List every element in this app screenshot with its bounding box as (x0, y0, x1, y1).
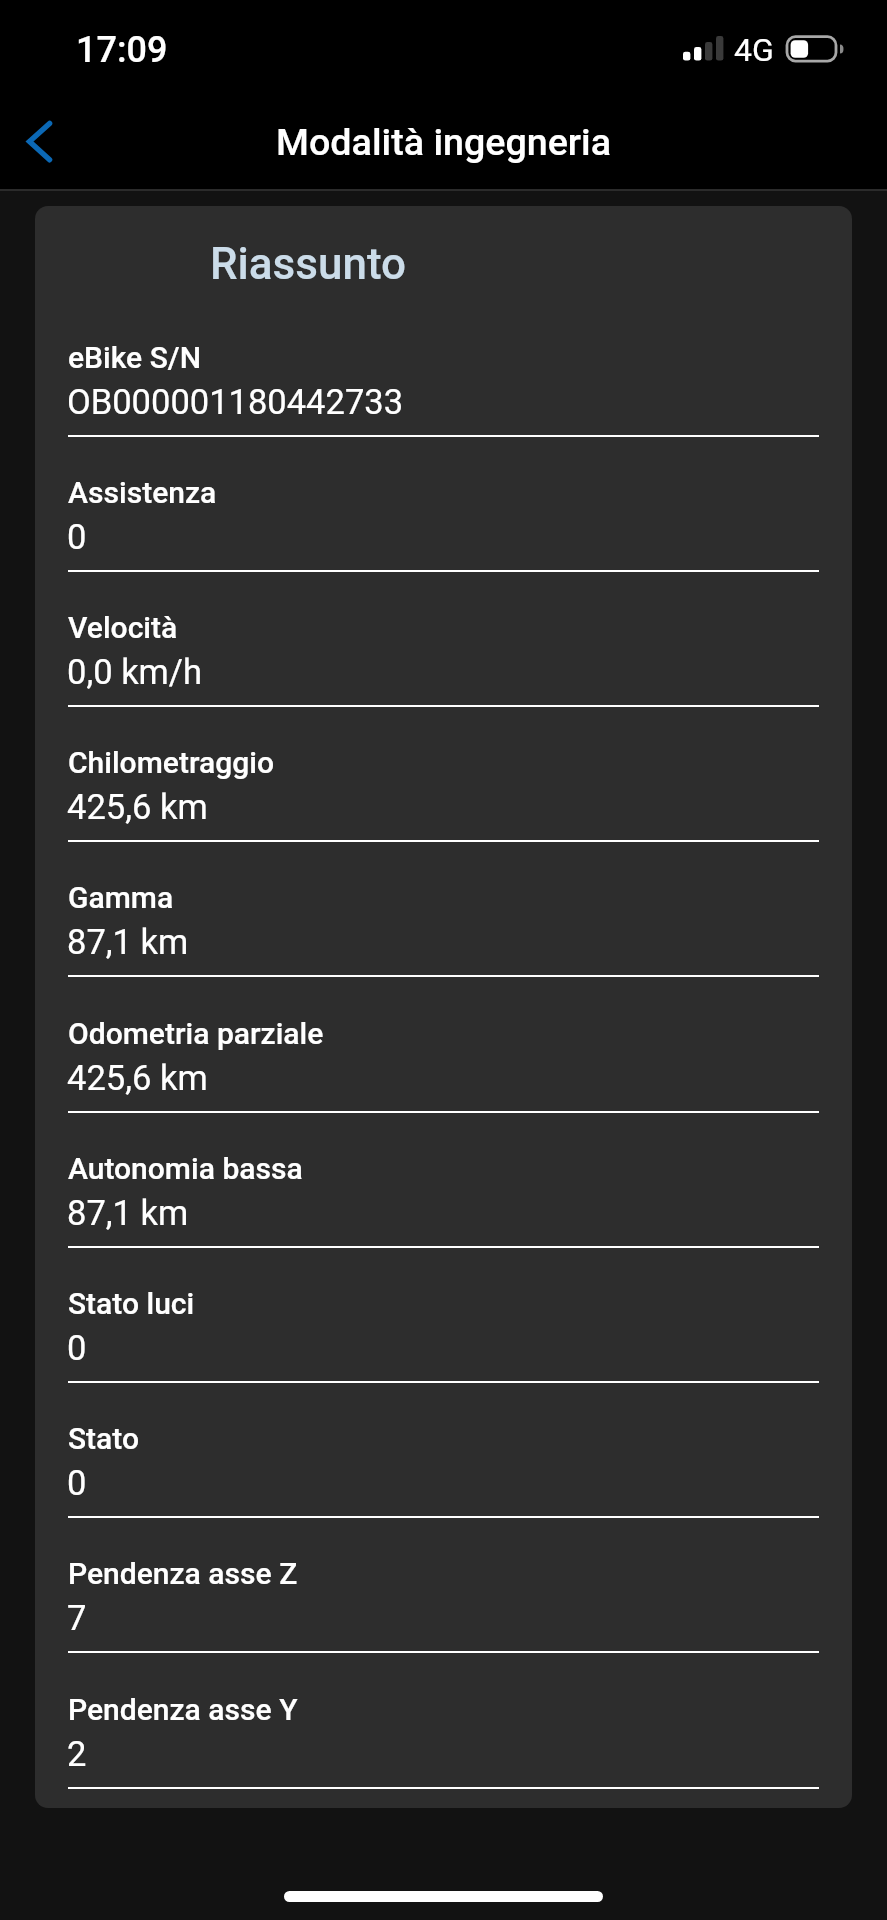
staticText: 0 (67, 1328, 87, 1368)
staticText: 0 (67, 517, 87, 557)
button[interactable]: Assistenza (35, 437, 852, 572)
button[interactable]: Stato luci (35, 1248, 852, 1383)
staticText: Autonomia bassa (68, 1151, 303, 1186)
button[interactable]: Odometria parziale (35, 978, 852, 1113)
button[interactable]: Pendenza asse Y (35, 1654, 852, 1789)
staticText: OB000001180442733 (67, 382, 404, 422)
staticText: 0,0 km/h (67, 652, 203, 692)
staticText: 17:09 (76, 29, 168, 71)
staticText: Modalità ingegneria (0, 120, 887, 164)
staticText: 87,1 km (67, 1193, 189, 1233)
button[interactable]: Velocità (35, 572, 852, 707)
staticText: Chilometraggio (68, 745, 275, 780)
button[interactable]: Gamma (35, 842, 852, 977)
staticText: Riassunto (35, 238, 581, 290)
staticText: Stato luci (68, 1286, 195, 1321)
staticText: Odometria parziale (68, 1016, 324, 1051)
staticText: 87,1 km (67, 922, 189, 962)
button[interactable]: Back (8, 98, 76, 184)
staticText: 2 (67, 1734, 87, 1774)
staticText: Gamma (68, 880, 174, 915)
staticText: eBike S/N (68, 340, 201, 375)
staticText: Pendenza asse Y (68, 1692, 298, 1727)
staticText: 4G (734, 31, 774, 69)
staticText: Stato (68, 1421, 139, 1456)
staticText: 0 (67, 1463, 87, 1503)
staticText: Velocità (68, 610, 178, 645)
button[interactable]: Chilometraggio (35, 707, 852, 842)
button[interactable]: eBike S/N (35, 302, 852, 437)
staticText: 7 (67, 1598, 87, 1638)
staticText: 425,6 km (67, 787, 208, 827)
button[interactable]: Autonomia bassa (35, 1113, 852, 1248)
staticText: Pendenza asse Z (68, 1556, 298, 1591)
button[interactable]: Pendenza asse Z (35, 1518, 852, 1653)
staticText: Assistenza (68, 475, 217, 510)
staticText: 425,6 km (67, 1058, 208, 1098)
button[interactable]: Stato (35, 1383, 852, 1518)
